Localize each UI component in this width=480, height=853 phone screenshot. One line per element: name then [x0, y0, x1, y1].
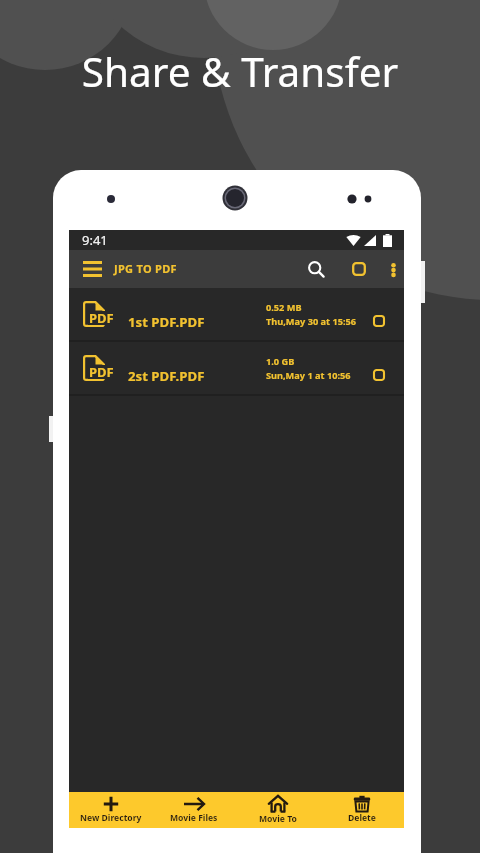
staticText: Sun,May 1 at 10:56 [266, 369, 351, 382]
button[interactable]: PDF [69, 288, 404, 340]
staticText: PDF [89, 309, 114, 327]
staticText: JPG TO PDF [114, 261, 177, 276]
button[interactable]: Delete [320, 792, 404, 828]
button[interactable]: Menu [83, 250, 102, 288]
button[interactable]: PDF [69, 342, 404, 394]
staticText: 2st PDF.PDF [128, 367, 205, 385]
staticText: 0.52 MB [266, 301, 302, 314]
staticText: 1.0 GB [266, 355, 295, 368]
staticText: Movie Files [170, 812, 218, 824]
staticText: Thu,May 30 at 15:56 [266, 315, 357, 328]
button[interactable]: More options [381, 250, 406, 288]
staticText: Delete [348, 812, 376, 824]
staticText: 9:41 [82, 231, 108, 249]
staticText: Movie To [259, 813, 297, 825]
staticText: PDF [89, 363, 114, 381]
staticText: 1st PDF.PDF [128, 313, 205, 331]
button[interactable]: Search [301, 251, 333, 289]
button[interactable]: Select all [343, 250, 375, 288]
button[interactable]: Movie Files [152, 792, 236, 828]
button[interactable]: Movie To [236, 792, 320, 828]
staticText: New Directory [80, 812, 142, 824]
button[interactable]: New Directory [69, 792, 152, 828]
staticText: Share & Transfer [0, 44, 480, 99]
